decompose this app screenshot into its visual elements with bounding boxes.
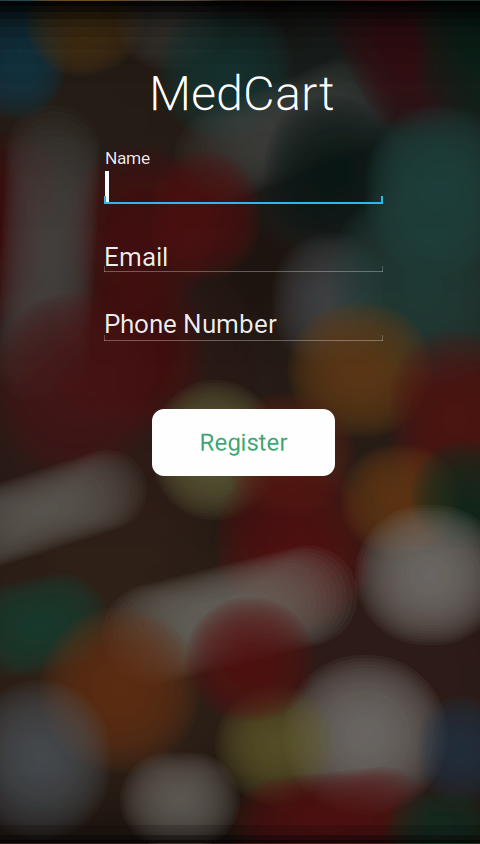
staticText: MedCart bbox=[149, 65, 335, 122]
staticText: Name bbox=[105, 148, 150, 168]
staticText: Email bbox=[104, 242, 168, 272]
staticText: Phone Number bbox=[104, 309, 277, 339]
button[interactable]: Register bbox=[152, 409, 335, 476]
staticText: Register bbox=[199, 428, 287, 456]
